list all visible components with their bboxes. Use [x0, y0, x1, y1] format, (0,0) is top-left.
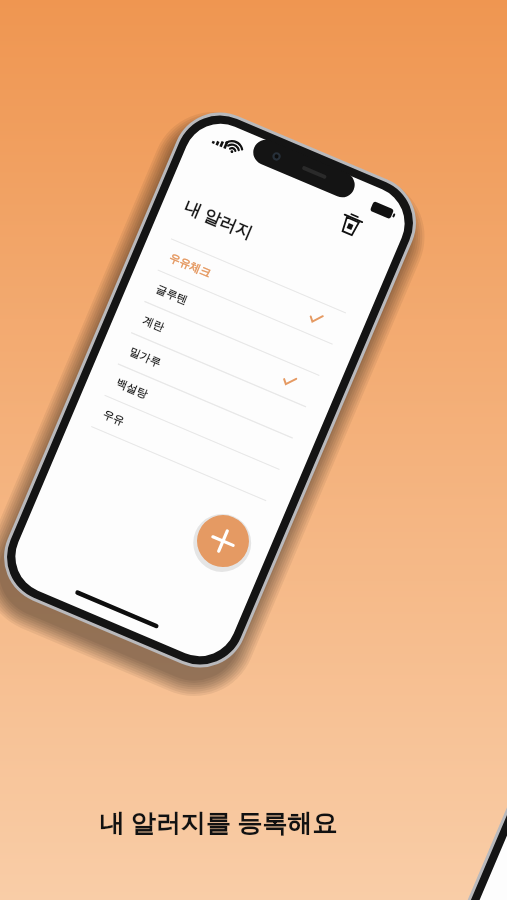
other: Second phone preview: [0, 0, 507, 900]
button[interactable]: My allergy list phone mockup: [0, 0, 507, 900]
